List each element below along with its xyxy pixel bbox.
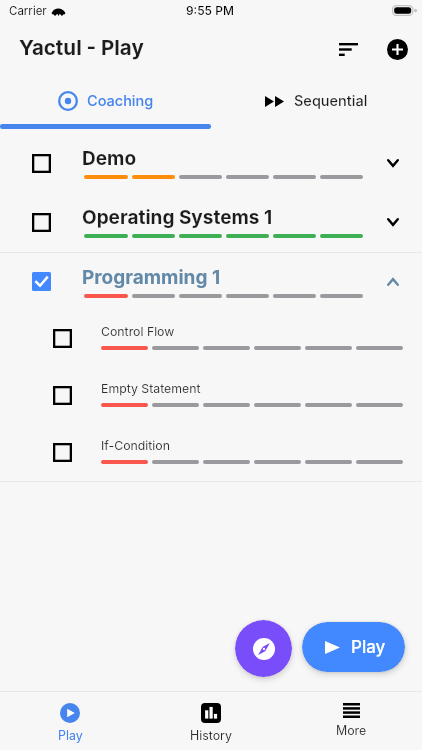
staticText: Demo	[82, 147, 137, 170]
button[interactable]: Add	[375, 27, 420, 72]
button[interactable]: History	[140, 691, 281, 750]
staticText: If-Condition	[101, 438, 170, 453]
button[interactable]: Coaching	[0, 78, 211, 124]
button[interactable]: Explore	[235, 620, 292, 677]
button[interactable]: Sequential	[211, 78, 422, 124]
staticText: Empty Statement	[101, 381, 201, 396]
staticText: Sequential	[294, 92, 368, 110]
staticText: More	[336, 723, 367, 738]
staticText: Play	[58, 728, 83, 743]
button[interactable]: Sort	[326, 27, 371, 72]
button[interactable]: Play	[302, 622, 405, 672]
staticText: Play	[351, 637, 386, 658]
button[interactable]: Demo	[0, 134, 422, 193]
staticText: Coaching	[87, 92, 154, 110]
staticText: 9:55 PM	[186, 3, 234, 18]
staticText: History	[190, 728, 232, 743]
button[interactable]: Control Flow	[0, 310, 422, 367]
staticText: Control Flow	[101, 324, 175, 339]
staticText: Yactul - Play	[19, 35, 144, 60]
button[interactable]: Empty Statement	[0, 367, 422, 424]
button[interactable]: Programming 1	[0, 253, 422, 312]
button[interactable]: If-Condition	[0, 424, 422, 481]
button[interactable]: Play	[0, 691, 140, 750]
staticText: Programming 1	[82, 266, 221, 289]
button[interactable]: More	[281, 691, 422, 750]
staticText: Carrier	[9, 4, 47, 18]
staticText: Operating Systems 1	[82, 206, 273, 229]
button[interactable]: Operating Systems 1	[0, 193, 422, 252]
